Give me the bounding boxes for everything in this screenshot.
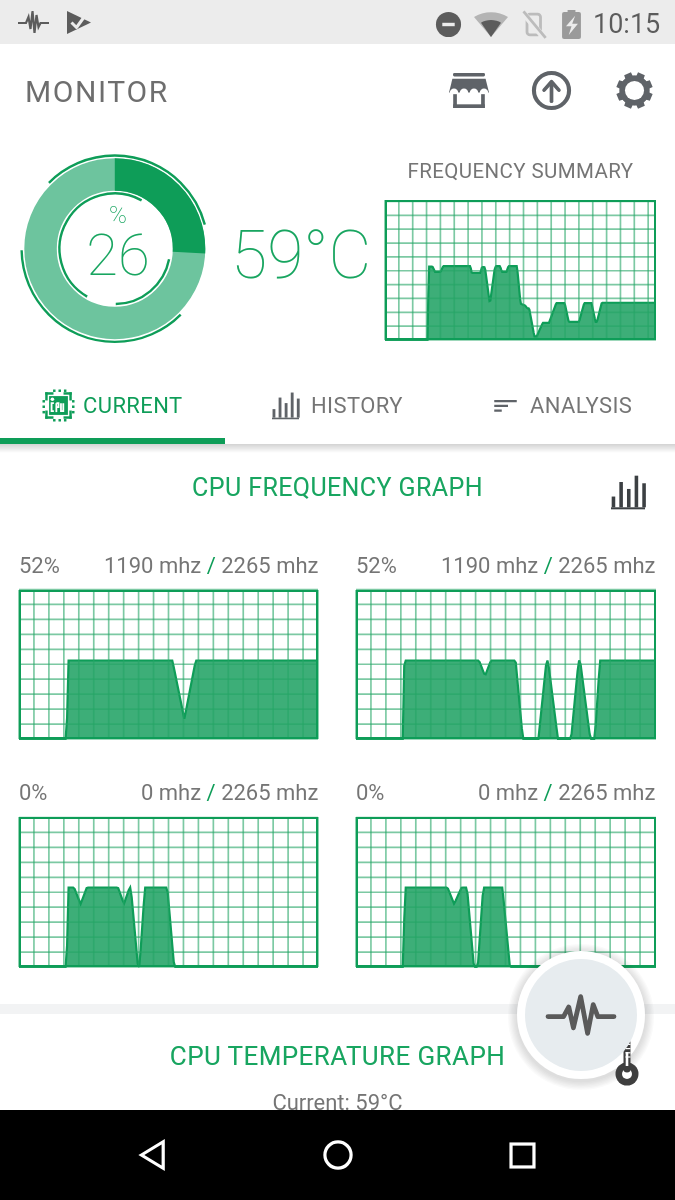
button[interactable]: Monitor (525, 959, 637, 1071)
button[interactable]: HISTORY (225, 373, 450, 438)
button[interactable]: ANALYSIS (450, 373, 675, 438)
button[interactable]: Store (437, 58, 501, 122)
staticText: 52% (356, 553, 397, 579)
button[interactable]: Graph options (604, 468, 652, 516)
staticText: FREQUENCY SUMMARY (385, 159, 656, 183)
staticText: 0 mhz / 2265 mhz (478, 780, 656, 806)
staticText: HISTORY (311, 393, 403, 419)
staticText: 0 mhz / 2265 mhz (141, 780, 319, 806)
staticText: 10:15 (593, 8, 661, 40)
button[interactable]: CURRENT (0, 373, 225, 438)
button[interactable]: Back (121, 1123, 185, 1187)
staticText: 0% (356, 780, 385, 806)
button[interactable]: Recents (490, 1123, 554, 1187)
button[interactable]: Home (306, 1123, 370, 1187)
staticText: CPU TEMPERATURE GRAPH (0, 1041, 675, 1071)
staticText: Current: 59°C (0, 1090, 675, 1116)
button[interactable]: Upload (519, 58, 583, 122)
staticText: % (58, 201, 178, 229)
staticText: MONITOR (25, 74, 169, 109)
staticText: 1190 mhz / 2265 mhz (441, 553, 656, 579)
staticText: CPU FREQUENCY GRAPH (0, 473, 675, 502)
staticText: 1190 mhz / 2265 mhz (104, 553, 319, 579)
staticText: ANALYSIS (530, 393, 633, 419)
button[interactable]: Settings (602, 58, 666, 122)
staticText: 26 (58, 221, 178, 289)
staticText: CURRENT (83, 393, 183, 419)
staticText: 59°C (231, 217, 372, 294)
staticText: 0% (19, 780, 48, 806)
staticText: 52% (19, 553, 60, 579)
